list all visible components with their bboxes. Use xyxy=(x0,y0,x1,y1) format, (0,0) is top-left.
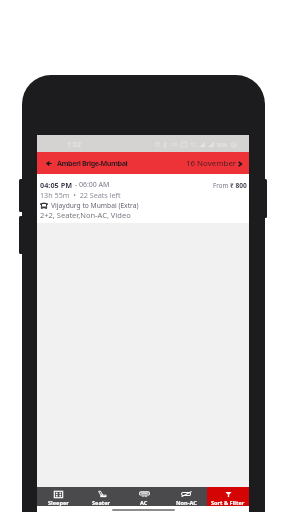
button[interactable]: 04:05 PM xyxy=(37,174,249,223)
button[interactable]: Seater xyxy=(80,487,123,506)
staticText: Sleeper xyxy=(48,499,69,507)
staticText: 13h 55m • 22 Seats left xyxy=(40,190,121,200)
staticText: 2+2, Seater,Non-AC, Video xyxy=(40,210,131,220)
button[interactable]: Back xyxy=(42,157,54,169)
staticText: 04:05 PM xyxy=(40,180,73,190)
staticText: 60% xyxy=(217,141,228,148)
button[interactable]: Sort & Filter xyxy=(207,487,249,506)
staticText: AC xyxy=(140,499,148,507)
button[interactable]: 16 November xyxy=(186,158,245,169)
staticText: - 06:00 AM xyxy=(73,180,110,190)
staticText: ₹ 800 xyxy=(230,181,247,190)
button[interactable]: Non-AC xyxy=(165,487,207,506)
staticText: Non-AC xyxy=(176,499,197,507)
staticText: Amberi Brige-Mumbai xyxy=(57,158,128,168)
staticText: Sort & Filter xyxy=(211,499,245,507)
staticText: Seater xyxy=(92,499,111,507)
staticText: 1:02 xyxy=(67,140,81,150)
button[interactable]: Sleeper xyxy=(37,487,80,506)
staticText: 122 xyxy=(170,142,178,148)
staticText: Vijaydurg to Mumbai (Extra) xyxy=(51,201,139,210)
button[interactable]: AC xyxy=(123,487,165,506)
staticText: 16 November xyxy=(186,158,237,169)
staticText: From xyxy=(213,181,230,189)
